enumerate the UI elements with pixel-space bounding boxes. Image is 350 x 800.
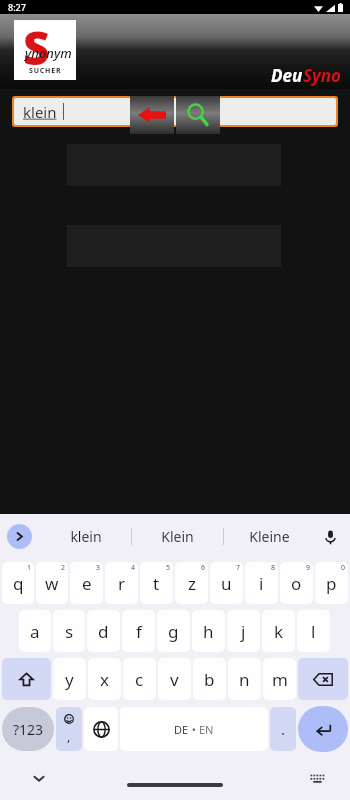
staticText: • [189, 722, 199, 737]
button[interactable]: s [53, 610, 85, 652]
button[interactable]: Zurück [130, 96, 174, 134]
staticText: S [23, 16, 50, 76]
staticText: Klein [161, 527, 194, 546]
staticText: v [170, 668, 179, 691]
staticText: n [239, 668, 250, 691]
button[interactable]: w [36, 562, 68, 604]
button[interactable]: Klein [132, 514, 223, 559]
staticText: i [259, 572, 264, 595]
staticText: 9 [306, 563, 311, 573]
staticText: klein [23, 102, 57, 122]
button[interactable]: klein [14, 98, 336, 125]
staticText: . [281, 719, 286, 739]
staticText: t [153, 572, 160, 595]
staticText: Kleine [249, 527, 290, 546]
staticText: 2 [61, 563, 66, 573]
button[interactable]: Eingabemethode wechseln [306, 767, 328, 789]
staticText: h [203, 620, 214, 643]
staticText: 6 [201, 563, 206, 573]
staticText: SUCHER [29, 66, 62, 76]
button[interactable]: Punkt [270, 707, 296, 751]
staticText: 1 [27, 563, 32, 573]
button[interactable]: Kleine [224, 514, 315, 559]
staticText: z [188, 572, 196, 595]
staticText: 3 [96, 563, 101, 573]
staticText: s [65, 620, 74, 643]
button[interactable]: m [263, 658, 296, 700]
button[interactable]: i [245, 562, 278, 604]
staticText: m [272, 668, 288, 691]
staticText: 0 [341, 563, 346, 573]
button[interactable]: Eingabe [298, 706, 348, 752]
button[interactable]: Sprache wechseln [84, 707, 118, 751]
staticText: e [82, 572, 92, 595]
staticText: 8 [271, 563, 276, 573]
staticText: q [13, 572, 24, 595]
staticText: w [45, 572, 59, 595]
staticText: u [221, 572, 232, 595]
staticText: , [67, 727, 71, 745]
button[interactable]: DE [120, 707, 268, 751]
staticText: 8:27 [8, 1, 26, 13]
staticText: ynonym [25, 44, 72, 62]
button[interactable]: e [70, 562, 103, 604]
staticText: r [118, 572, 126, 595]
staticText: o [291, 572, 302, 595]
button[interactable]: t [140, 562, 173, 604]
button[interactable]: h [192, 610, 225, 652]
staticText: 4 [131, 563, 136, 573]
button[interactable]: d [87, 610, 120, 652]
staticText: l [311, 620, 316, 643]
button[interactable]: g [157, 610, 190, 652]
button[interactable]: Tastatur schließen [28, 767, 50, 789]
staticText: EN [199, 722, 214, 737]
button[interactable]: f [122, 610, 155, 652]
button[interactable]: b [193, 658, 226, 700]
button[interactable]: z [175, 562, 208, 604]
staticText: f [136, 620, 142, 643]
button[interactable]: Emoji und Komma [56, 707, 82, 751]
button[interactable]: klein [40, 514, 131, 559]
button[interactable]: o [280, 562, 313, 604]
button[interactable]: v [158, 658, 191, 700]
staticText: j [241, 620, 246, 643]
staticText: DE [174, 722, 189, 737]
staticText: g [168, 620, 179, 643]
staticText: b [204, 668, 215, 691]
button[interactable]: n [228, 658, 261, 700]
button[interactable]: c [123, 658, 156, 700]
button[interactable]: y [53, 658, 86, 700]
button[interactable]: x [88, 658, 121, 700]
button[interactable]: u [210, 562, 243, 604]
button[interactable]: ?123 [2, 707, 54, 751]
button[interactable]: p [315, 562, 348, 604]
staticText: 7 [236, 563, 241, 573]
button[interactable]: q [2, 562, 34, 604]
staticText: Deu [271, 64, 303, 87]
button[interactable]: r [105, 562, 138, 604]
staticText: c [135, 668, 144, 691]
button[interactable]: l [297, 610, 330, 652]
staticText: ?123 [13, 720, 44, 739]
button[interactable]: Startbildschirm [127, 783, 223, 787]
button[interactable]: Suchen [176, 96, 220, 134]
button[interactable]: a [19, 610, 51, 652]
button[interactable]: Spracheingabe [318, 525, 342, 549]
button[interactable]: k [262, 610, 295, 652]
staticText: d [98, 620, 109, 643]
staticText: klein [70, 527, 102, 546]
button[interactable]: Umschalten [2, 658, 51, 700]
staticText: a [30, 620, 40, 643]
staticText: Syno [303, 64, 342, 87]
staticText: p [326, 572, 337, 595]
button[interactable]: Mehr Vorschläge [7, 524, 32, 549]
staticText: k [274, 620, 284, 643]
staticText: x [100, 668, 109, 691]
staticText: 5 [166, 563, 171, 573]
staticText: y [65, 668, 74, 691]
button[interactable]: Synonym Sucher Logo [14, 20, 76, 80]
button[interactable]: Löschen [298, 658, 348, 700]
button[interactable]: j [227, 610, 260, 652]
